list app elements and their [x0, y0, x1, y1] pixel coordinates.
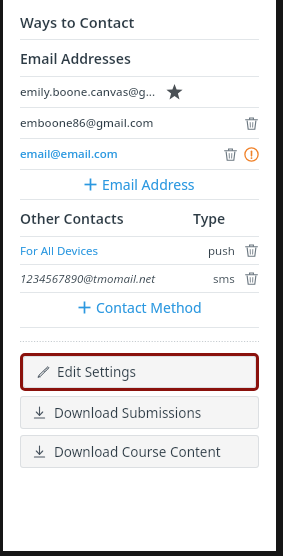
staticText: Other Contacts — [20, 209, 124, 228]
staticText: Ways to Contact — [20, 12, 135, 32]
button[interactable]: Email Address — [20, 170, 259, 199]
staticText: Contact Method — [96, 298, 202, 317]
button[interactable]: emily.boone.canvas@g... — [20, 77, 259, 107]
staticText: email@email.com — [20, 146, 118, 162]
staticText: Edit Settings — [57, 363, 137, 381]
staticText: emily.boone.canvas@g... — [20, 84, 156, 100]
staticText: sms — [213, 271, 235, 287]
staticText: Download Submissions — [54, 404, 202, 422]
button[interactable]: Delete emboone86@gmail.com — [244, 116, 259, 131]
staticText: 1234567890@tmomail.net — [20, 271, 156, 287]
button[interactable]: Download Submissions — [20, 396, 259, 429]
button[interactable]: Contact Method — [20, 293, 259, 322]
button[interactable]: Delete sms contact — [244, 271, 259, 286]
staticText: push — [208, 243, 235, 259]
button[interactable]: Download Course Content — [20, 435, 259, 468]
other: Default email — [166, 84, 183, 101]
button[interactable]: Delete email@email.com — [223, 147, 238, 162]
button[interactable]: For All Devices — [20, 243, 98, 259]
staticText: emboone86@gmail.com — [20, 115, 154, 131]
button[interactable]: Delete For All Devices — [244, 243, 259, 258]
staticText: Email Addresses — [20, 49, 131, 68]
button[interactable]: Edit Settings — [23, 356, 256, 388]
button[interactable]: Unconfirmed email warning — [244, 147, 259, 162]
staticText: Email Address — [102, 175, 195, 194]
staticText: Download Course Content — [54, 443, 221, 461]
staticText: Type — [193, 209, 226, 228]
